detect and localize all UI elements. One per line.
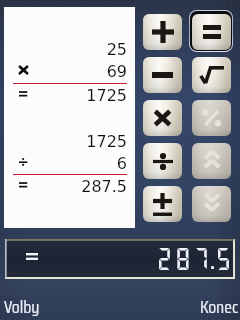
staticText: 287.5 [156,245,234,272]
staticText: 1725 [4,86,127,105]
button[interactable]: Square root [192,57,231,93]
staticText: Konec [200,293,239,320]
button[interactable]: Equals [192,14,231,50]
staticText: 69 [4,62,127,81]
staticText: 1725 [4,132,127,151]
button[interactable]: Percent [192,100,231,136]
staticText: 25 [4,40,127,59]
button[interactable]: Divide [143,143,182,179]
button[interactable]: Scroll up [192,143,231,179]
button[interactable]: Plus minus [143,186,182,222]
button[interactable]: Plus [143,14,182,50]
staticText: Volby [4,293,40,320]
button[interactable]: Multiply [143,100,182,136]
button[interactable]: Minus [143,57,182,93]
button[interactable]: Scroll down [192,186,231,222]
staticText: 6 [4,154,127,173]
button[interactable]: Volby [0,288,120,320]
button[interactable]: Konec [120,288,240,320]
staticText: 287.5 [4,177,127,196]
